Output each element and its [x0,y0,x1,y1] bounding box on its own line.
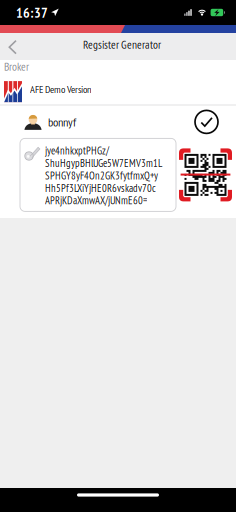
staticText: ShuHgypBHlUGe5W7EMV3m1L [45,156,162,170]
staticText: Hh5Pf3LXiYjHE0R6vskadv70c [45,181,156,195]
staticText: bonnyf [48,114,76,130]
staticText: SPHGY8yF4On2GK3fytfmxQ+y [45,169,158,182]
staticText: Broker [4,59,29,74]
staticText: Regsister Generator [83,37,161,52]
button[interactable]: Show QR code [179,148,232,201]
button[interactable]: Back [2,34,24,59]
staticText: jye4nhkxptPHGz/ [45,144,109,157]
button[interactable]: AFE Demo Version [0,79,236,105]
staticText: 16:37 [16,3,48,22]
staticText: AFE Demo Version [30,82,92,96]
staticText: APRjKDaXmwAX/jUNmE60= [45,194,147,207]
button[interactable]: Verified [195,110,218,133]
